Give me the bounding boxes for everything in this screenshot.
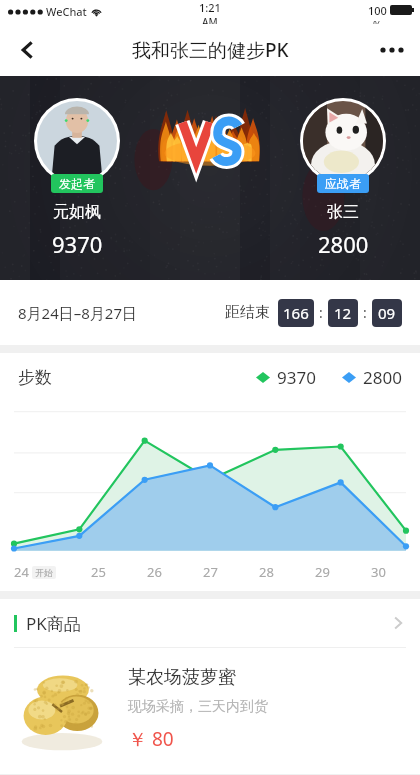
staticText: 25 [91, 563, 106, 581]
staticText: 9370 [277, 366, 316, 389]
staticText: 距结束 [225, 303, 270, 322]
staticText: 元如枫 [53, 202, 101, 222]
staticText: 张三 [327, 202, 359, 222]
staticText: 开始 [35, 567, 53, 578]
staticText: 27 [203, 563, 218, 581]
staticText: : [363, 303, 367, 322]
staticText: 现场采摘，三天内到货 [128, 698, 268, 716]
staticText: 应战者 [325, 176, 361, 191]
staticText: 26 [147, 563, 162, 581]
staticText: 步数 [18, 367, 52, 388]
staticText: 24 [14, 563, 29, 581]
staticText: 2800 [363, 366, 402, 389]
staticText: 28 [259, 563, 274, 581]
button[interactable]: 某农场菠萝蜜 [0, 648, 420, 774]
staticText: 09 [378, 303, 396, 323]
staticText: 8月24日–8月27日 [18, 303, 137, 323]
staticText: 12 [334, 303, 352, 323]
staticText: 2800 [318, 229, 369, 259]
other: More [390, 615, 406, 631]
button[interactable]: Back [6, 28, 50, 72]
button[interactable]: PK商品 [0, 599, 420, 647]
staticText: 30 [371, 563, 386, 581]
staticText: ￥ 80 [128, 726, 174, 752]
staticText: PK商品 [26, 612, 81, 635]
staticText: % [373, 18, 382, 24]
staticText: AM [202, 15, 218, 24]
staticText: 1:21 [199, 0, 221, 15]
staticText: : [319, 303, 323, 322]
staticText: 166 [283, 303, 309, 323]
staticText: 9370 [52, 229, 103, 259]
staticText: 我和张三的健步PK [132, 37, 289, 63]
staticText: 某农场菠萝蜜 [128, 666, 236, 689]
staticText: WeChat [46, 4, 87, 19]
staticText: 发起者 [59, 176, 95, 191]
button[interactable]: More options [370, 28, 414, 72]
staticText: 29 [315, 563, 330, 581]
staticText: 100 [368, 3, 387, 18]
